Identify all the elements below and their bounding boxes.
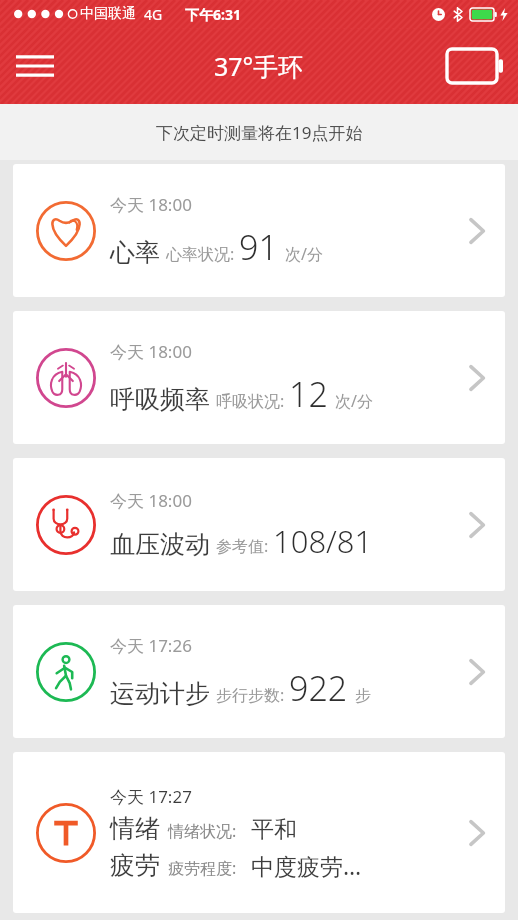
staticText: 下午6:31 bbox=[185, 5, 241, 24]
staticText: 呼吸状况: bbox=[216, 390, 285, 412]
staticText: 下次定时测量将在19点开始 bbox=[156, 121, 363, 144]
staticText: 运动计步 bbox=[110, 678, 210, 709]
staticText: 疲劳 bbox=[110, 850, 160, 881]
staticText: 步 bbox=[355, 686, 371, 706]
button[interactable]: 今天 17:27 bbox=[13, 752, 505, 913]
staticText: 中国联通 bbox=[80, 5, 136, 23]
staticText: 91 bbox=[239, 224, 278, 270]
staticText: 4G bbox=[144, 5, 163, 24]
staticText: 今天 18:00 bbox=[110, 193, 192, 216]
button[interactable]: 今天 17:26 bbox=[13, 605, 505, 738]
staticText: 今天 18:00 bbox=[110, 489, 192, 512]
staticText: 情绪状况: bbox=[168, 820, 237, 842]
staticText: 情绪 bbox=[110, 813, 160, 844]
staticText: 37°手环 bbox=[214, 49, 304, 83]
staticText: 108/81 bbox=[273, 520, 373, 562]
button[interactable]: 今天 18:00 bbox=[13, 311, 505, 444]
staticText: 血压波动 bbox=[110, 529, 210, 560]
staticText: 心率状况: bbox=[166, 243, 235, 265]
staticText: 呼吸频率 bbox=[110, 384, 210, 415]
staticText: 疲劳程度: bbox=[168, 857, 237, 879]
staticText: 次/分 bbox=[285, 243, 323, 265]
staticText: 平和 bbox=[251, 815, 297, 844]
staticText: 922 bbox=[289, 665, 348, 711]
button[interactable]: Menu bbox=[8, 39, 62, 93]
staticText: 12 bbox=[289, 371, 328, 417]
staticText: 中度疲劳… bbox=[251, 850, 362, 881]
staticText: 步行步数: bbox=[216, 684, 285, 706]
staticText: 今天 17:27 bbox=[110, 785, 192, 808]
staticText: 心率 bbox=[110, 237, 160, 268]
staticText: 参考值: bbox=[216, 535, 269, 557]
staticText: 今天 17:26 bbox=[110, 634, 192, 657]
staticText: 次/分 bbox=[335, 390, 373, 412]
button[interactable]: Battery status bbox=[444, 42, 506, 90]
staticText: 今天 18:00 bbox=[110, 340, 192, 363]
button[interactable]: 今天 18:00 bbox=[13, 458, 505, 591]
button[interactable]: 今天 18:00 bbox=[13, 164, 505, 297]
